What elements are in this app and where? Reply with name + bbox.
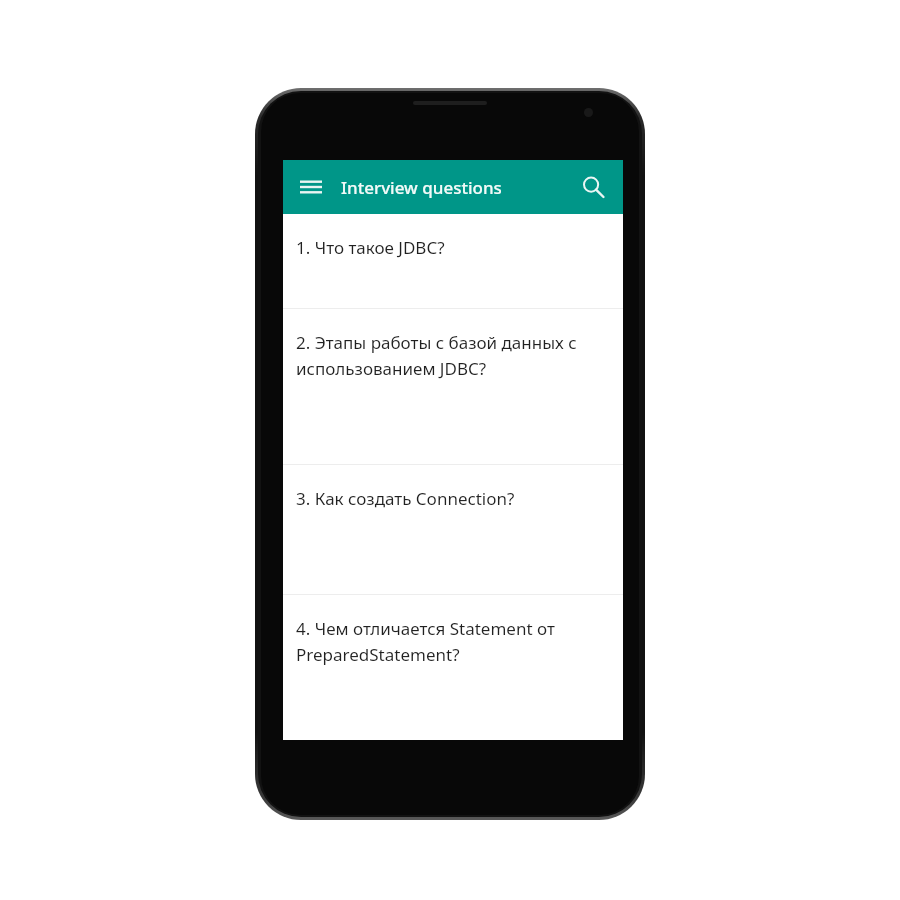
staticText: 4. Чем отличается Statement от PreparedS… <box>296 617 605 666</box>
button[interactable]: 2. Этапы работы с базой данных с использ… <box>283 309 623 464</box>
button[interactable]: 1. Что такое JDBC? <box>283 214 623 308</box>
staticText: Interview questions <box>341 176 502 199</box>
staticText: 1. Что такое JDBC? <box>296 236 445 259</box>
button[interactable]: 4. Чем отличается Statement от PreparedS… <box>283 595 623 740</box>
button[interactable]: Open navigation menu <box>289 165 333 209</box>
button[interactable]: 3. Как создать Connection? <box>283 465 623 594</box>
button[interactable]: Search <box>571 165 615 209</box>
staticText: 2. Этапы работы с базой данных с использ… <box>296 331 605 380</box>
staticText: 3. Как создать Connection? <box>296 487 515 510</box>
